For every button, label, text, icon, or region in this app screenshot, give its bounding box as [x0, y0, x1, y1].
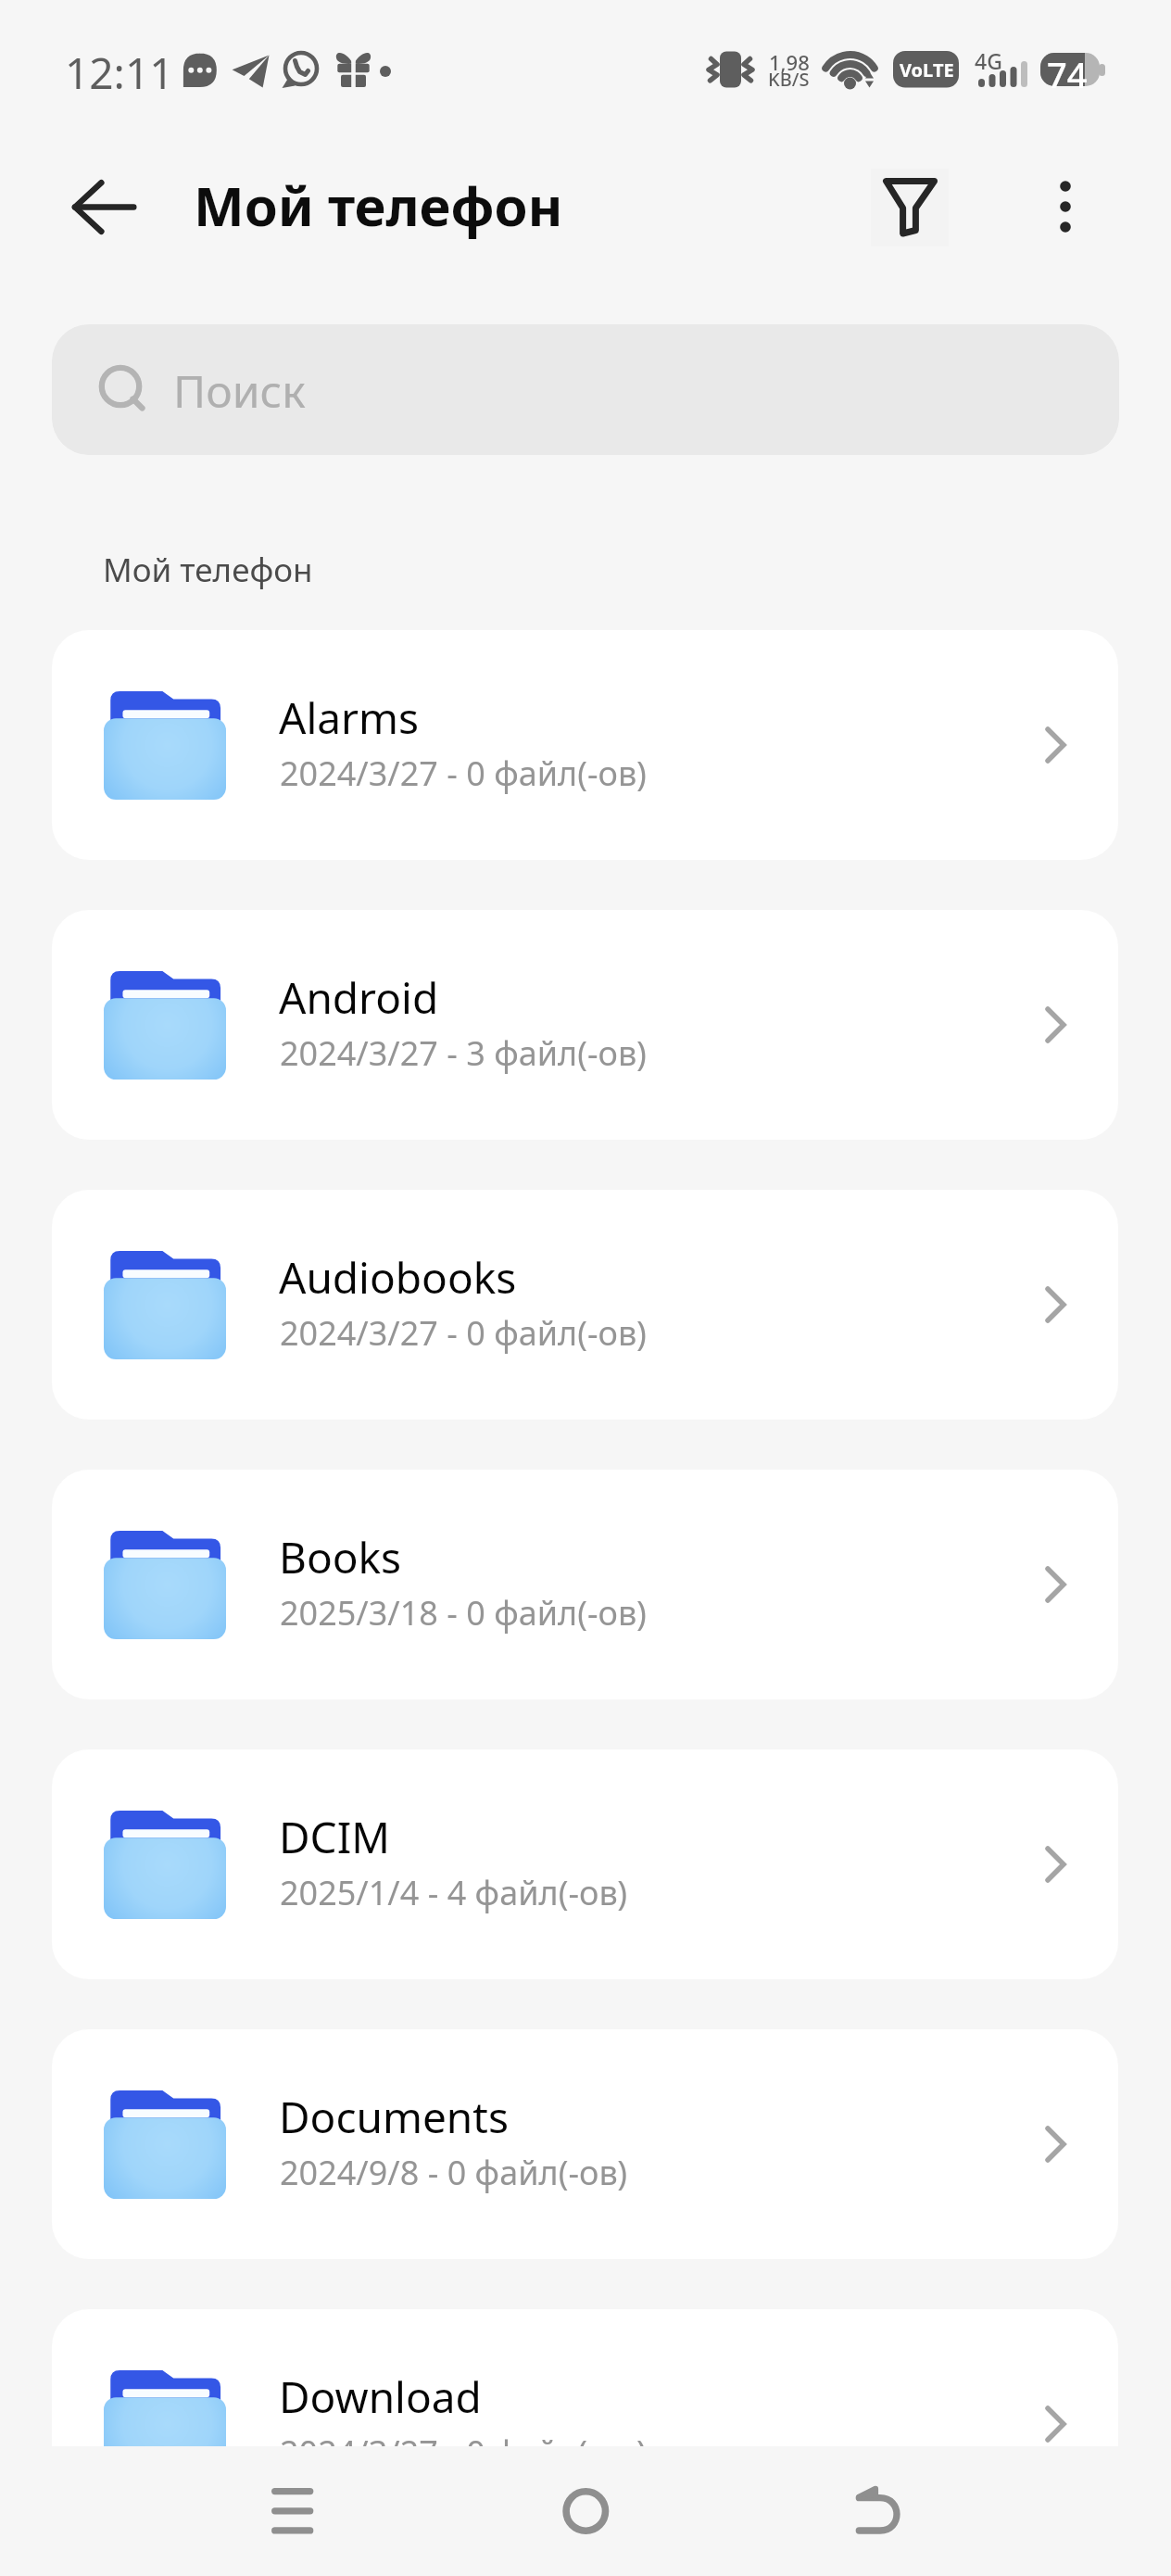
staticText: VoLTE	[900, 57, 954, 82]
button[interactable]: More options	[1026, 168, 1104, 246]
staticText: Мой телефон	[103, 548, 313, 592]
staticText: Audiobooks	[279, 1248, 517, 1307]
staticText: 2024/3/27 - 0 файл(-ов)	[280, 751, 647, 796]
button[interactable]: Back	[57, 158, 154, 255]
staticText: 2024/3/27 - 3 файл(-ов)	[280, 1030, 647, 1076]
staticText: 2025/3/18 - 0 файл(-ов)	[280, 1590, 647, 1635]
staticText: Android	[279, 968, 439, 1027]
staticText: Поиск	[173, 360, 306, 421]
staticText: KB/S	[768, 67, 810, 92]
staticText: 2024/3/27 - 0 файл(-ов)	[280, 2430, 647, 2475]
button[interactable]: Download	[52, 2309, 1118, 2539]
staticText: 2024/9/8 - 0 файл(-ов)	[280, 2150, 628, 2195]
button[interactable]: Alarms	[52, 630, 1118, 860]
button[interactable]: Filter	[871, 169, 949, 246]
button[interactable]: Books	[52, 1470, 1118, 1699]
button[interactable]: Documents	[52, 2029, 1118, 2259]
staticText: Alarms	[279, 688, 420, 747]
button[interactable]: Поиск	[52, 324, 1119, 455]
staticText: 12:11	[65, 44, 174, 102]
button[interactable]: DCIM	[52, 1749, 1118, 1979]
staticText: DCIM	[279, 1808, 390, 1866]
staticText: 74	[1047, 50, 1088, 98]
button[interactable]: Recent apps	[228, 2446, 358, 2576]
button[interactable]: Home	[521, 2446, 650, 2576]
staticText: 2025/1/4 - 4 файл(-ов)	[280, 1870, 628, 1915]
staticText: Books	[279, 1528, 402, 1586]
staticText: Documents	[279, 2088, 509, 2146]
button[interactable]: Audiobooks	[52, 1190, 1118, 1420]
staticText: 1,98	[769, 48, 810, 76]
button[interactable]: Back	[815, 2446, 945, 2576]
staticText: Мой телефон	[194, 169, 563, 242]
button[interactable]: Android	[52, 910, 1118, 1140]
staticText: 4G	[975, 46, 1002, 75]
staticText: 2024/3/27 - 0 файл(-ов)	[280, 1310, 647, 1356]
staticText: Download	[279, 2368, 482, 2426]
